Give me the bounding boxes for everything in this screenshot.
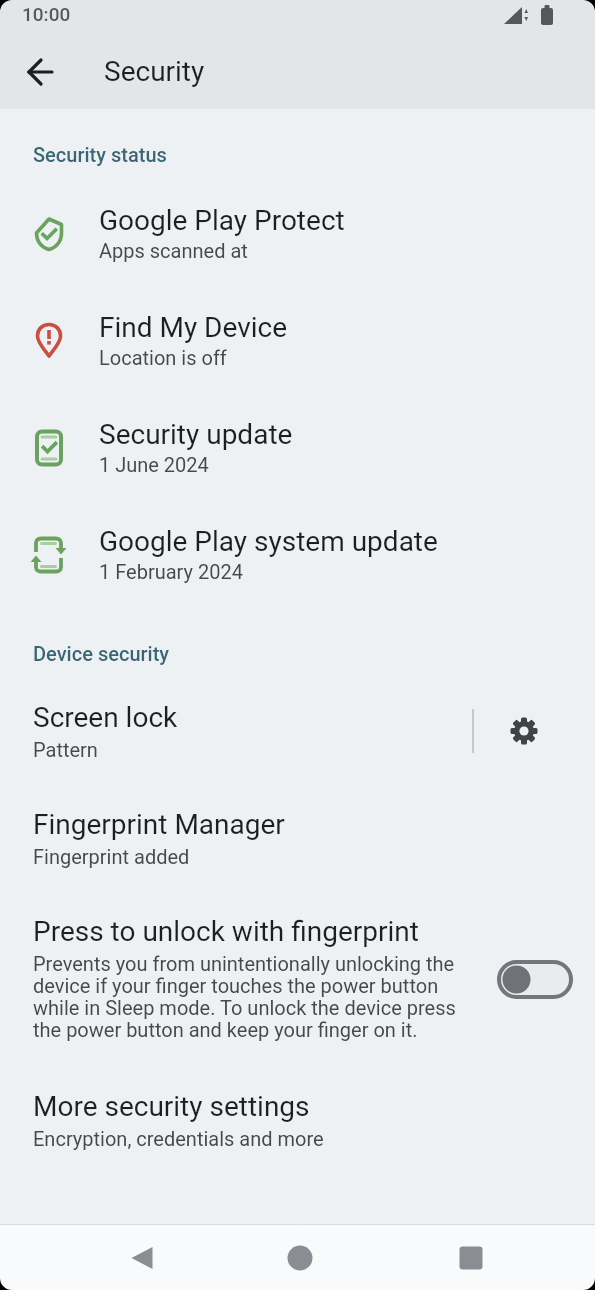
- button[interactable]: Google Play Protect: [0, 180, 595, 287]
- staticText: Fingerprint Manager: [33, 808, 285, 841]
- staticText: Security status: [33, 143, 167, 166]
- button[interactable]: Google Play system update: [0, 501, 595, 608]
- staticText: Find My Device: [99, 311, 288, 344]
- button[interactable]: [497, 960, 573, 999]
- button[interactable]: Fingerprint Manager: [0, 787, 595, 894]
- staticText: Location is off: [99, 346, 227, 369]
- button[interactable]: [278, 1236, 322, 1280]
- staticText: Security: [104, 55, 205, 88]
- button[interactable]: Screen lock: [0, 680, 595, 787]
- staticText: Fingerprint added: [33, 845, 190, 868]
- button[interactable]: More security settings: [0, 1069, 595, 1176]
- staticText: the power button and keep your finger on…: [33, 1018, 418, 1041]
- staticText: while in Sleep mode. To unlock the devic…: [33, 996, 456, 1019]
- staticText: Apps scanned at: [99, 239, 248, 262]
- staticText: Prevents you from unintentionally unlock…: [33, 952, 455, 975]
- button[interactable]: Find My Device: [0, 287, 595, 394]
- staticText: Security update: [99, 418, 293, 451]
- button[interactable]: Press to unlock with fingerprint: [0, 894, 595, 1069]
- staticText: Press to unlock with fingerprint: [33, 915, 419, 948]
- button[interactable]: [121, 1236, 165, 1280]
- staticText: Pattern: [33, 738, 98, 761]
- staticText: device if your finger touches the power …: [33, 974, 439, 997]
- staticText: Screen lock: [33, 701, 178, 734]
- button[interactable]: Security update: [0, 394, 595, 501]
- button[interactable]: [500, 707, 548, 755]
- staticText: More security settings: [33, 1090, 310, 1123]
- button[interactable]: [449, 1236, 493, 1280]
- staticText: Google Play Protect: [99, 204, 345, 237]
- staticText: Google Play system update: [99, 525, 438, 558]
- staticText: Device security: [33, 642, 170, 665]
- staticText: 10:00: [22, 3, 71, 25]
- staticText: 1 June 2024: [99, 453, 209, 476]
- button[interactable]: [16, 48, 64, 96]
- staticText: Encryption, credentials and more: [33, 1127, 324, 1150]
- staticText: 1 February 2024: [99, 560, 243, 583]
